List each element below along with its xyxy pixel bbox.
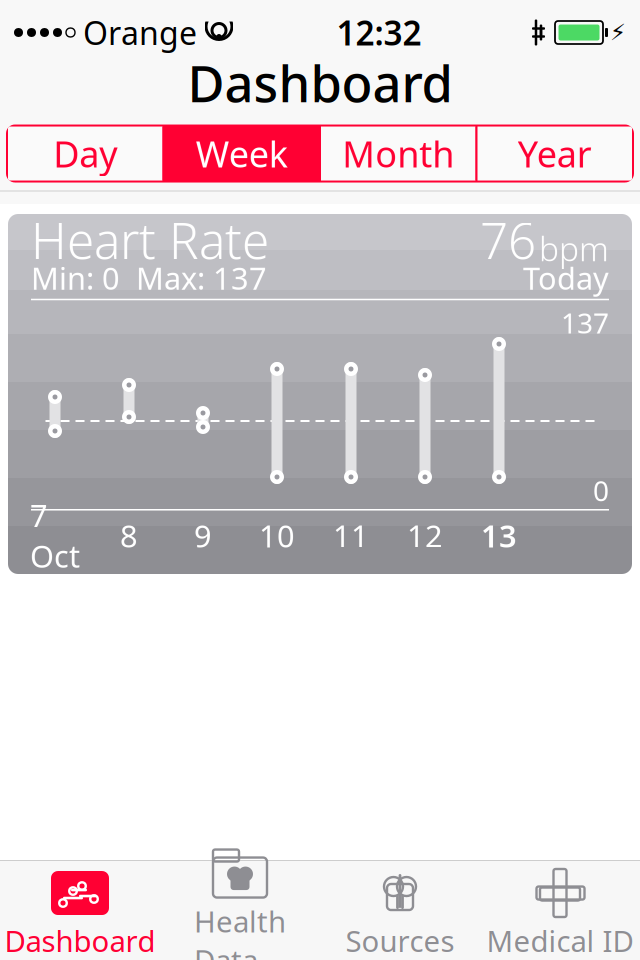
staticText: ⚡︎ bbox=[610, 20, 626, 45]
staticText: Heart Rate bbox=[31, 207, 269, 272]
button[interactable]: Month bbox=[321, 126, 475, 180]
staticText: Medical ID bbox=[486, 921, 633, 960]
staticText: 11 bbox=[333, 515, 369, 556]
staticText: 9 bbox=[194, 515, 212, 556]
button[interactable]: Week bbox=[164, 126, 319, 180]
staticText: Month bbox=[342, 130, 454, 177]
staticText: Day bbox=[53, 130, 117, 177]
staticText: bpm bbox=[539, 226, 609, 270]
button[interactable]: Medical ID bbox=[480, 861, 640, 960]
staticText: Dashboard bbox=[4, 921, 155, 960]
button[interactable]: Dashboard bbox=[0, 861, 160, 960]
button[interactable]: Sources bbox=[320, 861, 480, 960]
staticText: Today bbox=[523, 257, 609, 298]
staticText: 12:32 bbox=[336, 10, 421, 55]
staticText: 137 bbox=[561, 304, 609, 341]
staticText: Week bbox=[196, 130, 288, 177]
button[interactable]: Health Data bbox=[160, 861, 320, 960]
staticText: 10 bbox=[259, 515, 295, 556]
staticText: Dashboard bbox=[187, 49, 452, 116]
staticText: 76 bbox=[480, 207, 536, 272]
button[interactable]: Day bbox=[8, 126, 162, 180]
staticText: Year bbox=[518, 130, 592, 177]
staticText: 7 Oct bbox=[30, 495, 80, 576]
staticText: Sources bbox=[345, 921, 454, 960]
button[interactable]: Heart Rate bbox=[8, 214, 632, 574]
staticText: Orange bbox=[83, 11, 197, 54]
button[interactable]: Year bbox=[477, 126, 632, 180]
staticText: 0 bbox=[593, 472, 609, 509]
staticText: 8 bbox=[120, 515, 138, 556]
staticText: Min: 0 Max: 137 bbox=[31, 257, 267, 298]
staticText: 13 bbox=[481, 515, 517, 556]
staticText: Health Data bbox=[194, 901, 286, 960]
staticText: 12 bbox=[407, 515, 443, 556]
